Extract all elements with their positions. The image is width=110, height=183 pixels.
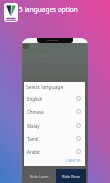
staticText: Malay [27, 123, 40, 129]
staticText: CANCEL [66, 158, 81, 163]
staticText: Ride Now [62, 174, 80, 179]
staticText: Ride Later [30, 174, 49, 179]
button[interactable]: CANCEL [66, 158, 85, 166]
staticText: Arabic [27, 149, 41, 155]
staticText: Select language [26, 84, 64, 91]
staticText: 5 languages option [19, 5, 78, 14]
button[interactable]: Brand logo [4, 3, 18, 22]
staticText: English [27, 96, 43, 102]
staticText: Pickup Point [25, 53, 49, 58]
button[interactable]: Arabic [24, 145, 85, 158]
button[interactable]: Ride Now [56, 169, 86, 183]
button[interactable]: Chinese [24, 105, 85, 118]
button[interactable]: English [24, 92, 85, 105]
staticText: Chinese [27, 109, 44, 115]
button[interactable]: Tamil [24, 132, 85, 145]
button[interactable]: Ride Later [24, 169, 54, 183]
staticText: Tamil [27, 136, 39, 142]
button[interactable]: Malay [24, 119, 85, 132]
